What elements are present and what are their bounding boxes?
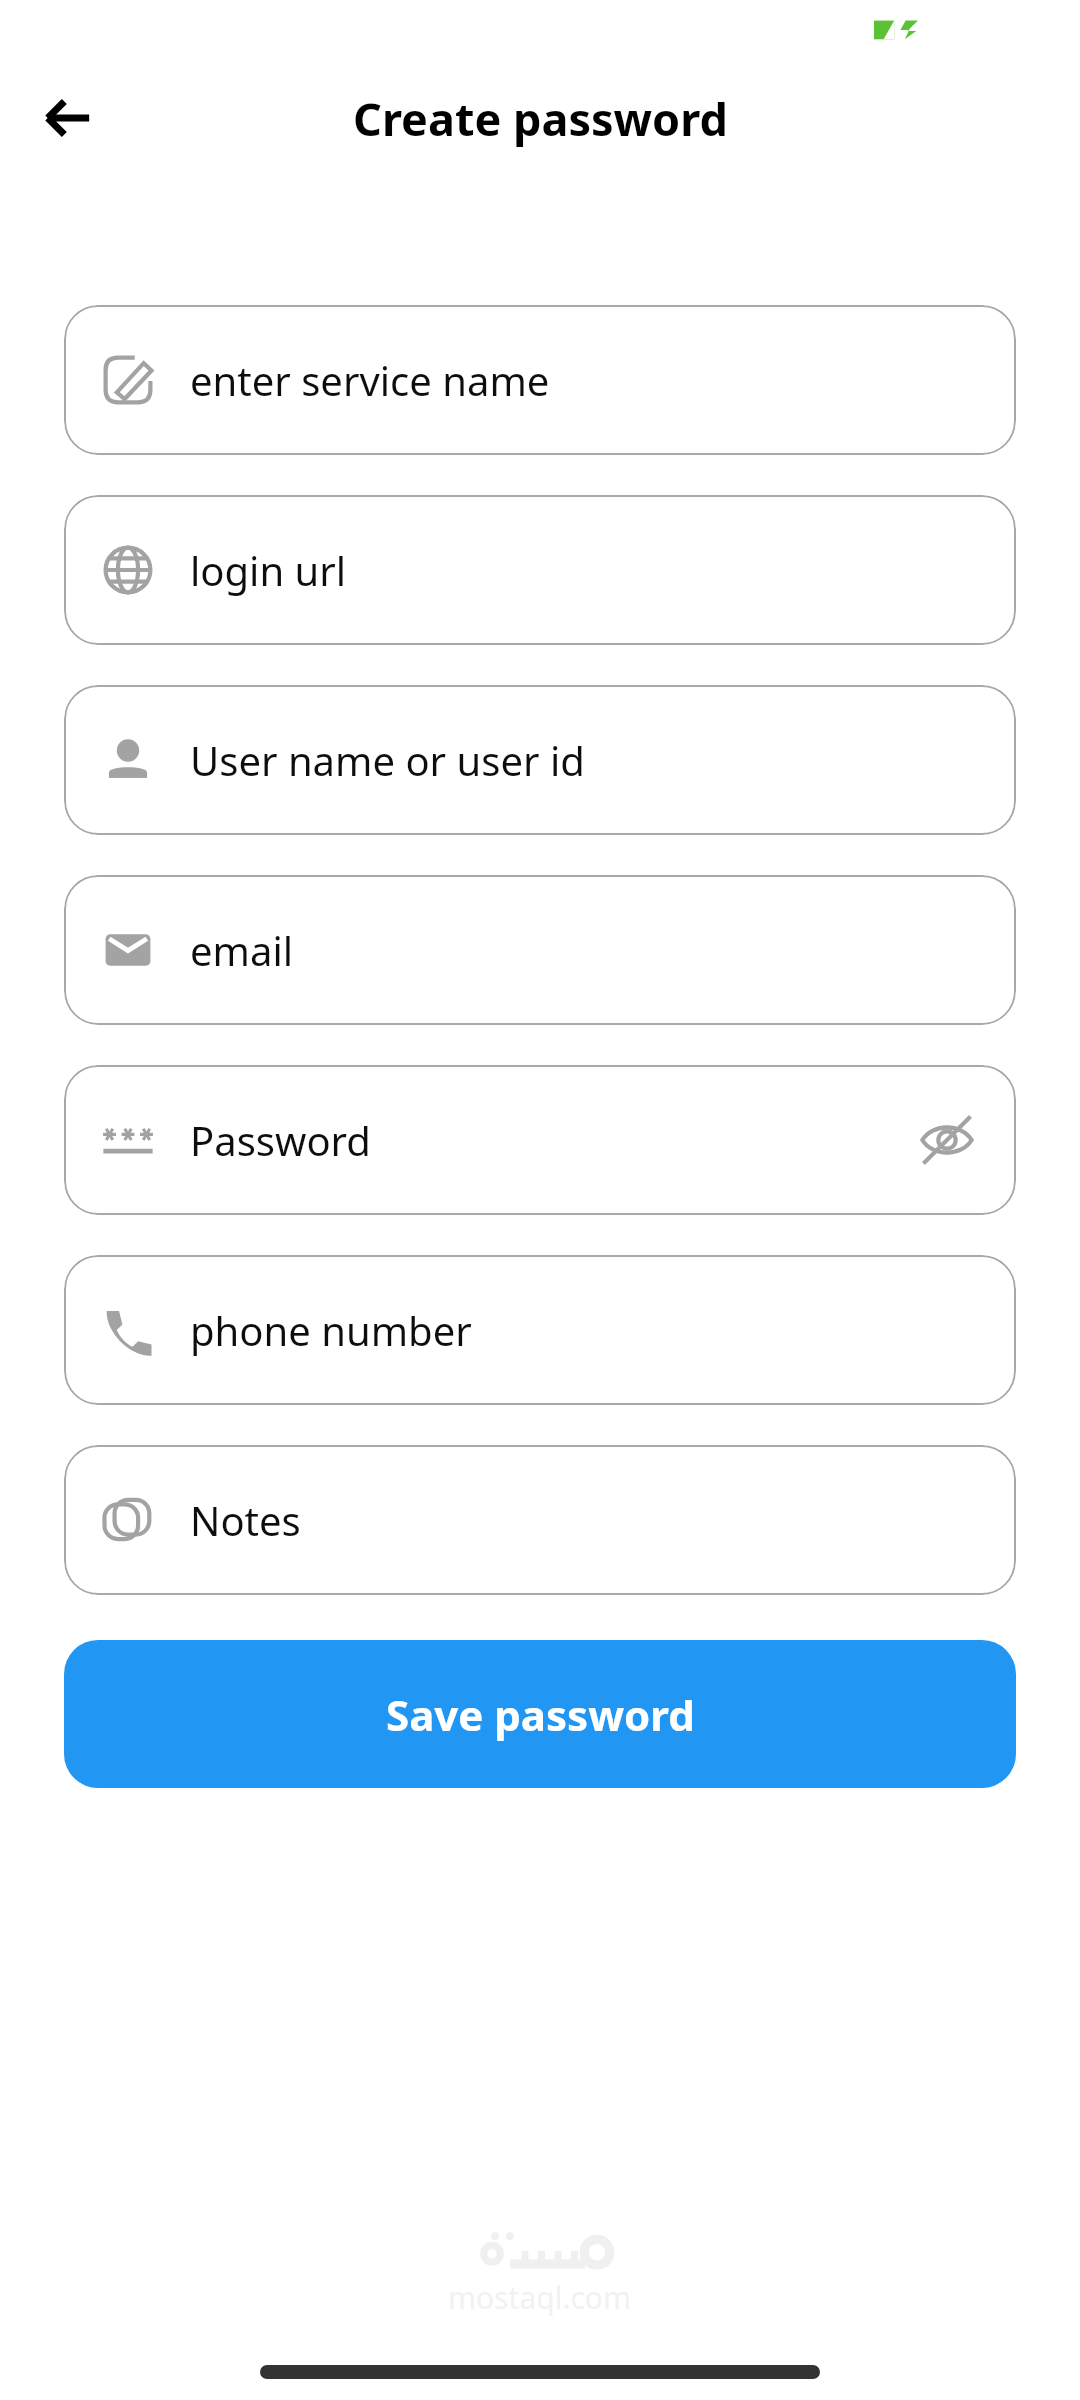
staticText: User name or user id: [190, 733, 980, 787]
staticText: Save password: [386, 1686, 695, 1743]
staticText: login url: [190, 543, 980, 597]
button[interactable]: Notes: [64, 1445, 1016, 1595]
button[interactable]: email: [64, 875, 1016, 1025]
staticText: enter service name: [190, 353, 980, 407]
staticText: Notes: [190, 1493, 980, 1547]
button[interactable]: enter service name: [64, 305, 1016, 455]
staticText: mostaql.com: [448, 2277, 632, 2318]
button[interactable]: Save password: [64, 1640, 1016, 1788]
staticText: Password: [190, 1113, 914, 1167]
button[interactable]: User name or user id: [64, 685, 1016, 835]
staticText: Create password: [353, 88, 728, 149]
button[interactable]: Back: [26, 76, 110, 160]
button[interactable]: Show password: [914, 1107, 980, 1173]
button[interactable]: login url: [64, 495, 1016, 645]
button[interactable]: phone number: [64, 1255, 1016, 1405]
staticText: email: [190, 923, 980, 977]
staticText: phone number: [190, 1303, 980, 1357]
button[interactable]: Password: [64, 1065, 1016, 1215]
